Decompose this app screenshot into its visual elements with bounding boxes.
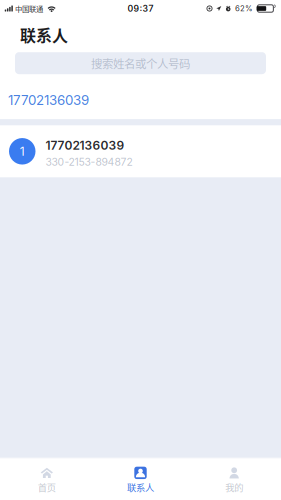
staticText: 首页	[38, 480, 56, 494]
staticText: 1	[20, 144, 25, 158]
staticText: 330-2153-894872	[45, 156, 132, 168]
staticText: 我的	[225, 480, 243, 494]
button[interactable]: 联系人	[94, 458, 187, 500]
staticText: 09:37	[127, 3, 153, 14]
staticText: 中国联通	[15, 3, 43, 14]
button[interactable]: 首页	[0, 458, 94, 500]
staticText: 联系人	[127, 480, 154, 494]
button[interactable]: 我的	[187, 458, 281, 500]
staticText: 17702136039	[8, 92, 89, 108]
button[interactable]: 1	[0, 125, 281, 177]
staticText: 17702136039	[45, 138, 124, 153]
staticText: 62%	[235, 4, 253, 13]
staticText: 搜索姓名或个人号码	[91, 55, 190, 71]
staticText: 联系人	[20, 23, 68, 46]
